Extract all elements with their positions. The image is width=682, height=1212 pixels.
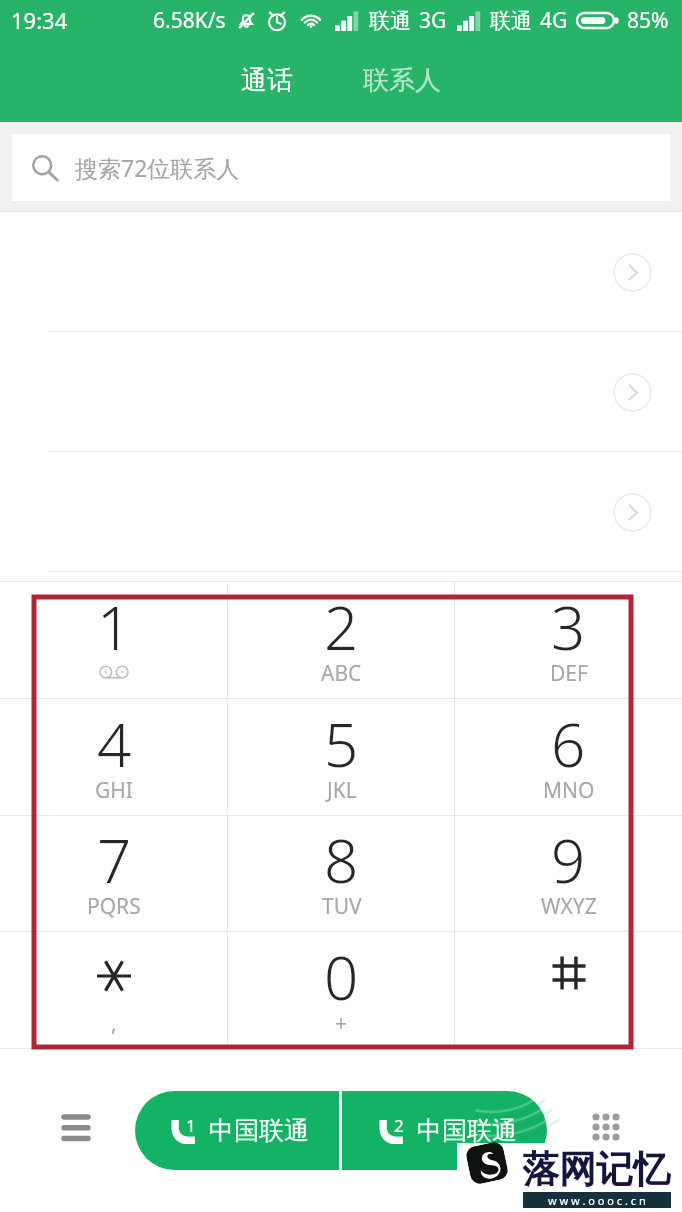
staticText: MNO xyxy=(543,776,595,805)
button[interactable]: Dial pad xyxy=(582,1106,630,1154)
staticText: 通话 xyxy=(241,64,293,97)
staticText: + xyxy=(335,1009,348,1038)
staticText: WXYZ xyxy=(541,892,597,921)
staticText: 3G xyxy=(419,6,447,35)
staticText: 搜索72位联系人 xyxy=(75,152,240,183)
button[interactable]: 2 xyxy=(342,1091,547,1170)
staticText: PQRS xyxy=(87,892,141,921)
button[interactable]: 联系人 xyxy=(348,50,456,111)
button[interactable]: 1 xyxy=(0,582,228,698)
button[interactable]: 搜索72位联系人 xyxy=(12,134,671,201)
staticText: 1 xyxy=(186,1114,196,1137)
button[interactable]: Open call details xyxy=(612,372,653,413)
button[interactable]: , xyxy=(0,932,228,1048)
button[interactable]: Open call details xyxy=(612,492,653,533)
staticText: , xyxy=(111,1009,117,1038)
button[interactable]: 通话 xyxy=(226,50,308,111)
staticText: 2 xyxy=(394,1114,404,1137)
button[interactable]: 6 xyxy=(455,699,682,815)
button[interactable]: 9 xyxy=(455,815,682,931)
button[interactable]: 0 xyxy=(228,932,455,1048)
staticText: w w w . o o o c . c n xyxy=(548,1193,646,1208)
staticText: GHI xyxy=(95,776,133,805)
staticText: 落网记忆 xyxy=(522,1146,670,1193)
staticText: 0 xyxy=(324,936,359,1018)
staticText: 联系人 xyxy=(363,64,441,97)
staticText: 1 xyxy=(97,586,132,668)
staticText: 8 xyxy=(324,819,359,901)
staticText: 中国联通 xyxy=(417,1115,517,1146)
button[interactable]: 3 xyxy=(455,582,682,698)
button[interactable]: 4 xyxy=(0,699,228,815)
staticText: 19:34 xyxy=(11,5,68,35)
staticText: 4G xyxy=(540,6,568,35)
button[interactable]: Open call details xyxy=(612,252,653,293)
staticText: 85% xyxy=(627,6,669,35)
staticText: TUV xyxy=(322,892,362,921)
staticText: 4 xyxy=(97,703,132,785)
staticText: 联通 xyxy=(369,8,411,34)
button[interactable]: 7 xyxy=(0,815,228,931)
button[interactable] xyxy=(455,932,682,1048)
staticText: JKL xyxy=(327,776,357,805)
staticText: 3 xyxy=(551,586,586,668)
button[interactable]: 2 xyxy=(228,582,455,698)
button[interactable]: Menu xyxy=(52,1106,100,1154)
button[interactable]: 8 xyxy=(228,815,455,931)
staticText: DEF xyxy=(550,659,588,688)
button[interactable]: 1 xyxy=(135,1091,339,1170)
button[interactable]: 5 xyxy=(228,699,455,815)
staticText: ABC xyxy=(321,659,362,688)
staticText: 2 xyxy=(324,586,359,668)
staticText: 9 xyxy=(551,819,586,901)
staticText: 联通 xyxy=(490,8,532,34)
staticText: 7 xyxy=(97,819,132,901)
staticText: 中国联通 xyxy=(209,1115,309,1146)
staticText: 5 xyxy=(324,703,359,785)
staticText: 6 xyxy=(551,703,586,785)
staticText: 6.58K/s xyxy=(153,6,226,35)
